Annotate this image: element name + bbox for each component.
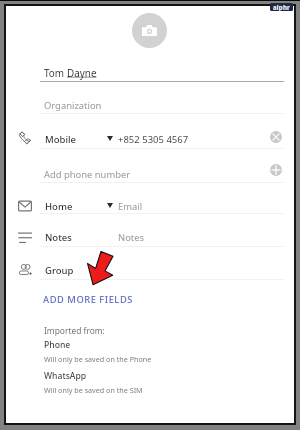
button[interactable]: ADD MORE FIELDS	[38, 288, 143, 310]
staticText: alphr	[273, 3, 290, 11]
staticText: Notes	[118, 231, 145, 244]
button[interactable]: Home	[0, 182, 300, 214]
staticText: Add phone number	[44, 168, 131, 181]
button[interactable]: Notes	[0, 213, 300, 246]
staticText: Phone	[44, 339, 71, 351]
button[interactable]: Add phone number	[270, 164, 282, 176]
staticText: Email	[118, 200, 143, 213]
staticText: Will only be saved on the Phone	[44, 354, 152, 364]
staticText: ADD MORE FIELDS	[43, 293, 133, 306]
staticText: Tom	[44, 66, 67, 79]
button[interactable]: Add phone number	[0, 148, 300, 182]
staticText: Organization	[44, 99, 102, 112]
staticText: Will only be saved on the SIM	[44, 385, 143, 395]
staticText: Notes	[45, 231, 72, 244]
staticText: Home	[45, 200, 73, 213]
button[interactable]: Tom	[0, 56, 300, 81]
button[interactable]: Clear phone number	[270, 131, 282, 143]
button[interactable]: Organization	[0, 81, 300, 113]
staticText: Mobile	[45, 133, 76, 146]
staticText: Group	[45, 264, 74, 277]
button[interactable]: Add photo	[132, 13, 167, 48]
staticText: Imported from:	[44, 325, 105, 336]
button[interactable]: Mobile	[0, 113, 300, 148]
staticText: Dayne	[67, 66, 97, 79]
staticText: WhatsApp	[44, 370, 87, 382]
staticText: +852 5305 4567	[118, 133, 189, 146]
button[interactable]: Group	[0, 246, 300, 279]
